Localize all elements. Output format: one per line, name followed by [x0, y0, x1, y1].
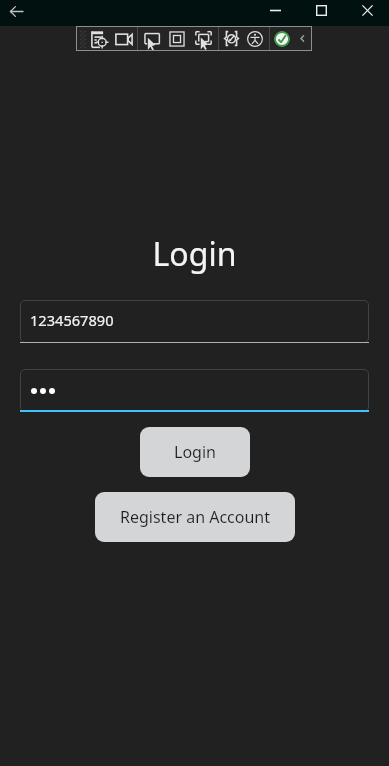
staticText: Register an Account — [120, 506, 271, 528]
button[interactable]: Capture — [191, 26, 216, 51]
button[interactable]: Layout Inspector — [86, 26, 110, 51]
button[interactable]: Close — [356, 0, 378, 21]
button[interactable]: Back — [5, 0, 27, 22]
staticText: Login — [174, 441, 216, 463]
button[interactable]: Accessibility — [243, 26, 267, 51]
button[interactable]: 1234567890 — [20, 300, 369, 343]
button[interactable]: Select — [140, 26, 164, 51]
button[interactable]: Collapse — [294, 26, 311, 51]
button[interactable]: Maximize — [310, 0, 332, 21]
button[interactable]: Checks — [270, 26, 294, 51]
button[interactable]: Record — [111, 26, 137, 51]
button[interactable]: Login — [140, 427, 250, 477]
button[interactable]: Minimize — [264, 0, 286, 21]
staticText: 1234567890 — [30, 310, 114, 330]
button[interactable]: Compose Inspect — [220, 26, 243, 51]
button[interactable] — [20, 369, 369, 412]
button[interactable]: Register an Account — [95, 492, 295, 542]
button[interactable]: Layout Bounds — [165, 26, 189, 51]
staticText: Login — [0, 232, 389, 276]
